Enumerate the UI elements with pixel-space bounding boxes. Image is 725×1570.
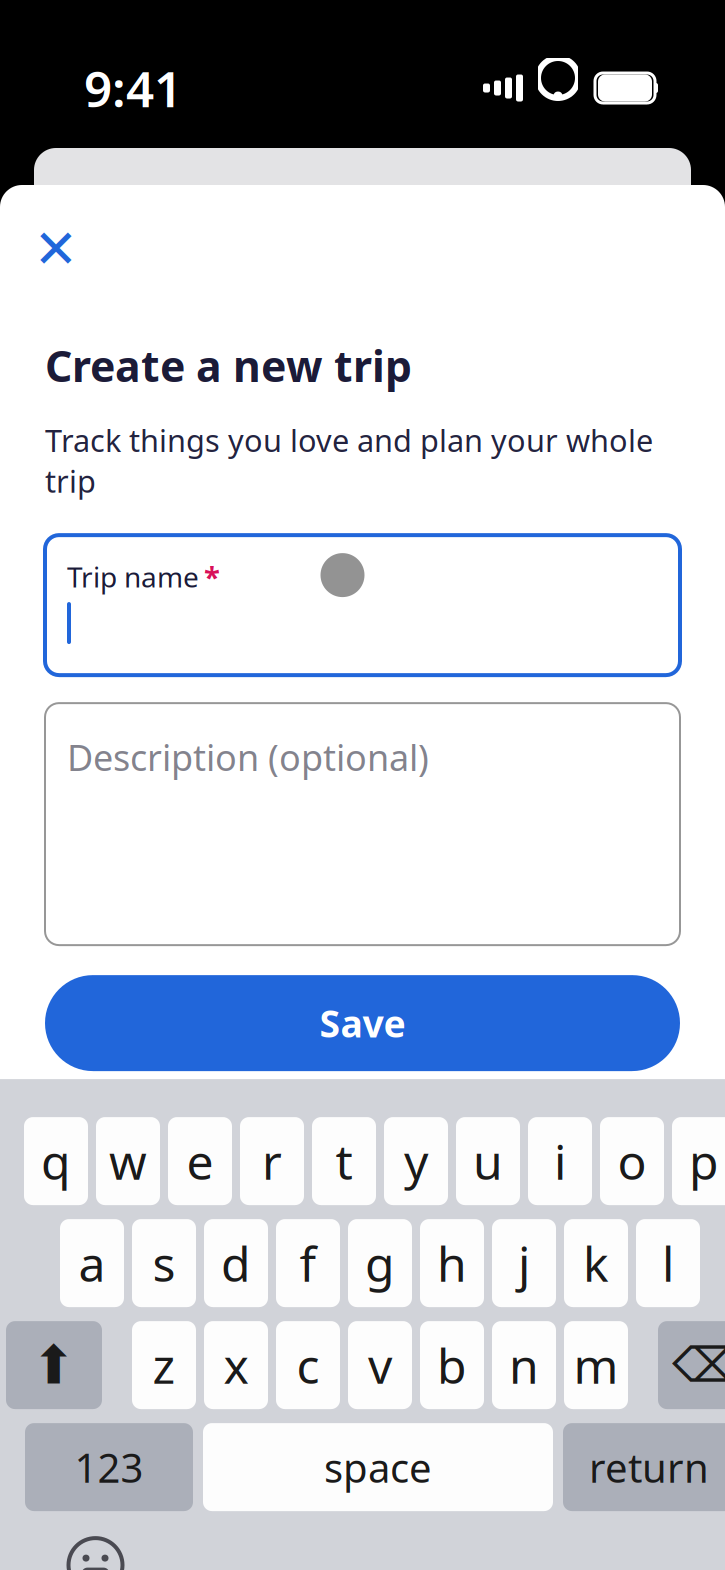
staticText: Description (optional) xyxy=(67,733,429,781)
button[interactable]: x xyxy=(204,1321,268,1409)
staticText: f xyxy=(299,1231,316,1295)
staticText: e xyxy=(186,1129,213,1193)
staticText: Trip name xyxy=(67,558,199,595)
button[interactable]: e xyxy=(168,1117,232,1205)
staticText: c xyxy=(296,1333,319,1397)
button[interactable]: t xyxy=(312,1117,376,1205)
staticText: t xyxy=(335,1129,352,1193)
button[interactable]: r xyxy=(240,1117,304,1205)
button[interactable]: f xyxy=(276,1219,340,1307)
button[interactable]: Emoji xyxy=(63,1533,127,1570)
button[interactable]: h xyxy=(420,1219,484,1307)
button[interactable]: Delete xyxy=(658,1321,725,1409)
button[interactable]: m xyxy=(564,1321,628,1409)
button[interactable]: o xyxy=(600,1117,664,1205)
staticText: q xyxy=(41,1129,71,1193)
button[interactable]: return xyxy=(563,1423,725,1511)
button[interactable]: Description (optional) xyxy=(45,703,680,945)
staticText: space xyxy=(324,1441,432,1494)
button[interactable]: Close xyxy=(26,219,86,279)
staticText: o xyxy=(617,1129,646,1193)
button[interactable]: v xyxy=(348,1321,412,1409)
staticText: 9:41 xyxy=(84,55,182,121)
button[interactable]: n xyxy=(492,1321,556,1409)
staticText: m xyxy=(573,1333,618,1397)
staticText: ⬆ xyxy=(31,1335,76,1395)
button[interactable]: c xyxy=(276,1321,340,1409)
button[interactable]: p xyxy=(672,1117,725,1205)
staticText: return xyxy=(589,1441,709,1494)
staticText: u xyxy=(473,1129,503,1193)
staticText: Save xyxy=(319,998,405,1048)
button[interactable]: b xyxy=(420,1321,484,1409)
button[interactable]: s xyxy=(132,1219,196,1307)
button[interactable]: u xyxy=(456,1117,520,1205)
staticText: * xyxy=(204,557,220,596)
button[interactable]: q xyxy=(24,1117,88,1205)
button[interactable]: a xyxy=(60,1219,124,1307)
staticText: n xyxy=(509,1333,539,1397)
staticText: b xyxy=(437,1333,467,1397)
staticText: a xyxy=(78,1231,105,1295)
staticText: y xyxy=(404,1129,428,1193)
button[interactable]: Trip name xyxy=(45,535,680,675)
staticText: x xyxy=(223,1333,248,1397)
staticText: j xyxy=(518,1231,530,1295)
staticText: k xyxy=(583,1231,609,1295)
staticText: l xyxy=(662,1231,674,1295)
button[interactable]: j xyxy=(492,1219,556,1307)
button[interactable]: y xyxy=(384,1117,448,1205)
button[interactable]: l xyxy=(636,1219,700,1307)
button[interactable]: d xyxy=(204,1219,268,1307)
staticText: z xyxy=(152,1333,175,1397)
staticText: p xyxy=(689,1129,719,1193)
staticText: h xyxy=(437,1231,467,1295)
button[interactable]: Save xyxy=(45,975,680,1071)
staticText: g xyxy=(365,1231,395,1295)
button[interactable]: z xyxy=(132,1321,196,1409)
staticText: ⌫ xyxy=(672,1338,725,1392)
button[interactable]: i xyxy=(528,1117,592,1205)
button[interactable]: space xyxy=(203,1423,553,1511)
button[interactable]: w xyxy=(96,1117,160,1205)
button[interactable]: g xyxy=(348,1219,412,1307)
staticText: s xyxy=(152,1231,175,1295)
staticText: ✕ xyxy=(33,219,78,279)
button[interactable]: Shift xyxy=(6,1321,102,1409)
staticText: r xyxy=(262,1129,282,1193)
staticText: Create a new trip xyxy=(45,337,412,394)
button[interactable]: k xyxy=(564,1219,628,1307)
staticText: i xyxy=(554,1129,566,1193)
staticText: 123 xyxy=(74,1441,143,1494)
button[interactable]: 123 xyxy=(25,1423,193,1511)
staticText: d xyxy=(221,1231,251,1295)
staticText: v xyxy=(368,1333,392,1397)
staticText: Track things you love and plan your whol… xyxy=(45,420,653,501)
staticText: w xyxy=(109,1129,147,1193)
